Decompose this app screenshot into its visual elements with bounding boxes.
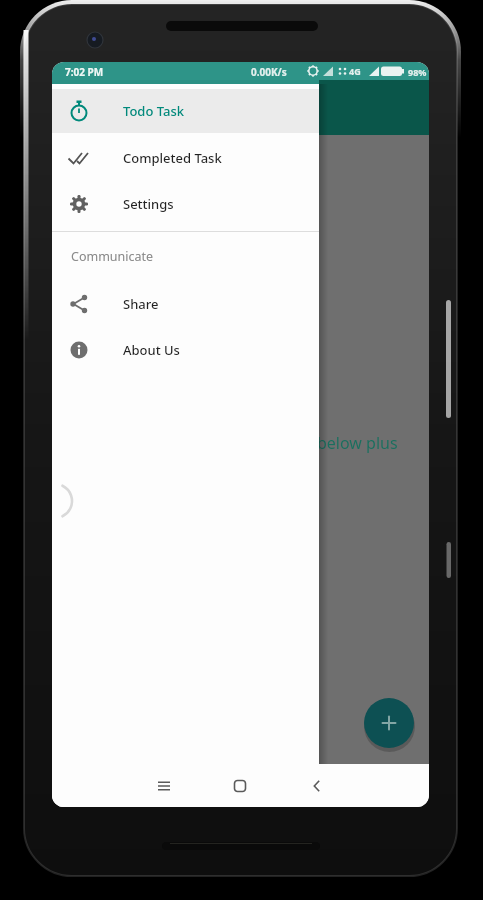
staticText: Completed Task [123,149,222,167]
button[interactable]: Completed Task [52,136,319,180]
button[interactable] [295,764,339,807]
staticText: Todo Task [123,102,185,120]
staticText: 4G [349,65,361,77]
staticText: Settings [123,195,174,213]
staticText: below plus [317,432,398,454]
staticText: About Us [123,341,180,359]
staticText: 7:02 PM [65,65,104,79]
button[interactable]: Settings [52,182,319,226]
staticText: Communicate [71,248,154,265]
button[interactable] [364,698,414,748]
staticText: 98% [408,66,427,78]
button[interactable] [218,764,262,807]
button[interactable] [142,764,186,807]
button[interactable]: About Us [52,328,319,372]
button[interactable]: Todo Task [52,89,319,133]
button[interactable]: Share [52,282,319,326]
staticText: 0.00K/s [251,65,287,79]
staticText: Share [123,295,159,313]
